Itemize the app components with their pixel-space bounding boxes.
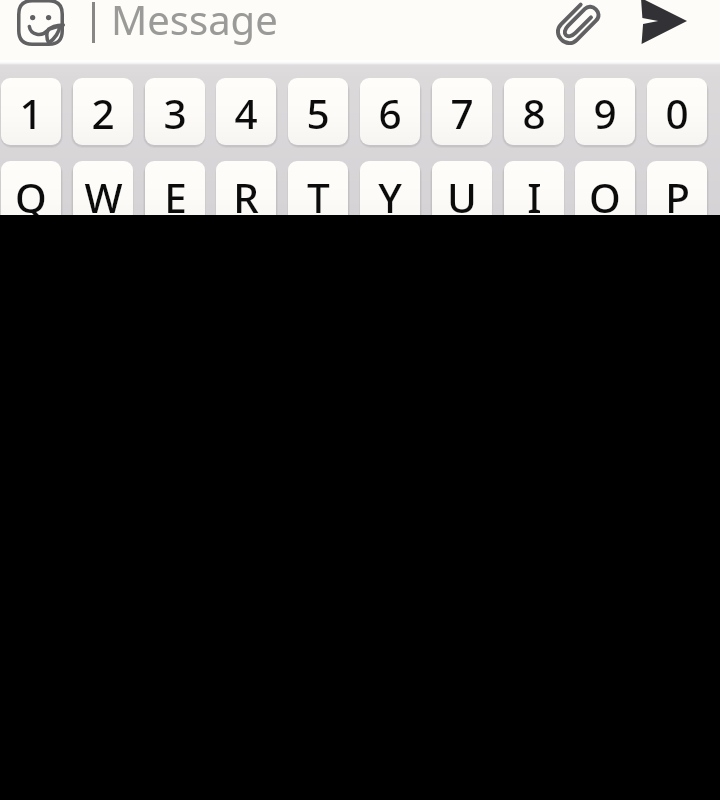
button[interactable]: 8: [504, 78, 564, 145]
staticText: 8: [522, 86, 546, 141]
staticText: 7: [450, 86, 474, 141]
button[interactable]: 0: [647, 78, 707, 145]
staticText: W: [84, 170, 123, 215]
staticText: R: [233, 170, 259, 215]
button[interactable]: U: [432, 161, 492, 215]
button[interactable]: 2: [73, 78, 133, 145]
staticText: Message: [111, 0, 278, 46]
button[interactable]: Y: [360, 161, 420, 215]
button[interactable]: 7: [432, 78, 492, 145]
staticText: 5: [306, 86, 330, 141]
staticText: E: [164, 170, 187, 215]
staticText: I: [527, 170, 542, 215]
button[interactable]: Stickers: [4, 0, 76, 58]
button[interactable]: O: [575, 161, 635, 215]
button[interactable]: E: [145, 161, 205, 215]
staticText: Y: [378, 170, 402, 215]
button[interactable]: 6: [360, 78, 420, 145]
staticText: 3: [163, 86, 187, 141]
button[interactable]: I: [504, 161, 564, 215]
staticText: Q: [15, 170, 47, 215]
staticText: 1: [19, 86, 43, 141]
staticText: 4: [234, 86, 258, 141]
button[interactable]: 9: [575, 78, 635, 145]
staticText: 6: [378, 86, 402, 141]
staticText: O: [589, 170, 621, 215]
button[interactable]: Q: [1, 161, 61, 215]
button[interactable]: P: [647, 161, 707, 215]
button[interactable]: 5: [288, 78, 348, 145]
staticText: 0: [665, 86, 689, 141]
button[interactable]: 3: [145, 78, 205, 145]
button[interactable]: W: [73, 161, 133, 215]
button[interactable]: Attach: [542, 0, 614, 59]
button[interactable]: T: [288, 161, 348, 215]
staticText: P: [665, 170, 690, 215]
button[interactable]: Send: [628, 0, 700, 57]
button[interactable]: R: [216, 161, 276, 215]
staticText: U: [447, 170, 477, 215]
button[interactable]: 4: [216, 78, 276, 145]
staticText: T: [307, 170, 330, 215]
button[interactable]: 1: [1, 78, 61, 145]
staticText: 9: [593, 86, 617, 141]
staticText: 2: [91, 86, 115, 141]
